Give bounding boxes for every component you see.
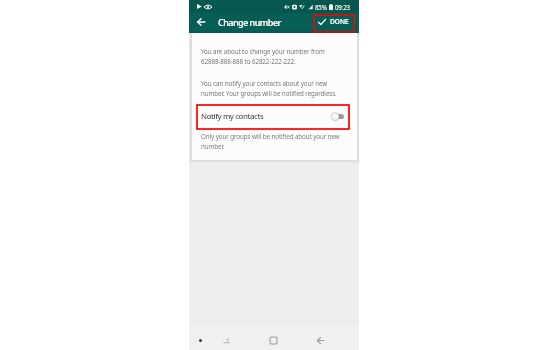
- staticText: You are about to change your number from…: [201, 47, 325, 66]
- staticText: DONE: [330, 17, 349, 26]
- button[interactable]: Notify my contacts: [192, 105, 357, 128]
- button[interactable]: Back: [193, 14, 209, 30]
- button[interactable]: Back: [313, 333, 327, 347]
- staticText: Notify my contacts: [201, 111, 264, 122]
- staticText: Change number: [218, 16, 281, 28]
- staticText: 09:23: [335, 3, 350, 11]
- staticText: You can notify your contacts about your …: [201, 79, 337, 98]
- button[interactable]: Hide keyboard: [219, 333, 233, 347]
- button[interactable]: DONE: [314, 15, 354, 32]
- button[interactable]: Recent apps: [266, 333, 280, 347]
- button[interactable]: Assistant: [193, 333, 207, 347]
- staticText: Only your groups will be notified about …: [201, 132, 340, 151]
- staticText: 85%: [315, 3, 327, 11]
